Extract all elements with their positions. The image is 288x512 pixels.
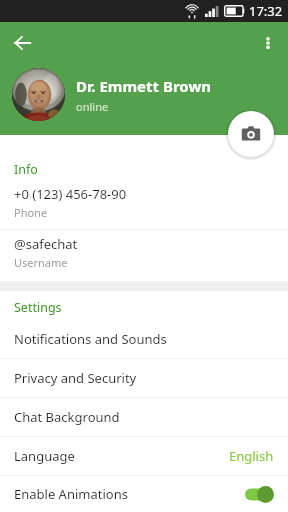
staticText: @safechat bbox=[14, 235, 78, 253]
button[interactable]: Chat Background bbox=[0, 398, 288, 436]
staticText: +0 (123) 456-78-90 bbox=[14, 185, 127, 203]
button[interactable]: Enable Animations bbox=[0, 476, 288, 512]
staticText: Settings bbox=[14, 299, 62, 316]
staticText: Info bbox=[14, 161, 38, 178]
button[interactable]: @safechat bbox=[0, 235, 288, 270]
button[interactable]: Back bbox=[8, 28, 37, 57]
staticText: English bbox=[229, 447, 274, 465]
staticText: Privacy and Security bbox=[14, 369, 137, 387]
button[interactable]: More options bbox=[253, 28, 282, 57]
button[interactable]: Privacy and Security bbox=[0, 359, 288, 397]
staticText: Enable Animations bbox=[14, 485, 128, 503]
staticText: Phone bbox=[14, 205, 48, 220]
button[interactable]: Language bbox=[0, 437, 288, 475]
button[interactable]: Notifications and Sounds bbox=[0, 320, 288, 358]
staticText: Chat Background bbox=[14, 408, 120, 426]
staticText: 17:32 bbox=[249, 2, 283, 20]
staticText: Notifications and Sounds bbox=[14, 330, 167, 348]
staticText: online bbox=[76, 99, 109, 114]
button[interactable]: Change profile photo bbox=[228, 111, 274, 157]
staticText: Dr. Emmett Brown bbox=[76, 76, 211, 96]
staticText: Username bbox=[14, 255, 68, 270]
staticText: Language bbox=[14, 447, 75, 465]
button[interactable]: +0 (123) 456-78-90 bbox=[0, 185, 288, 220]
